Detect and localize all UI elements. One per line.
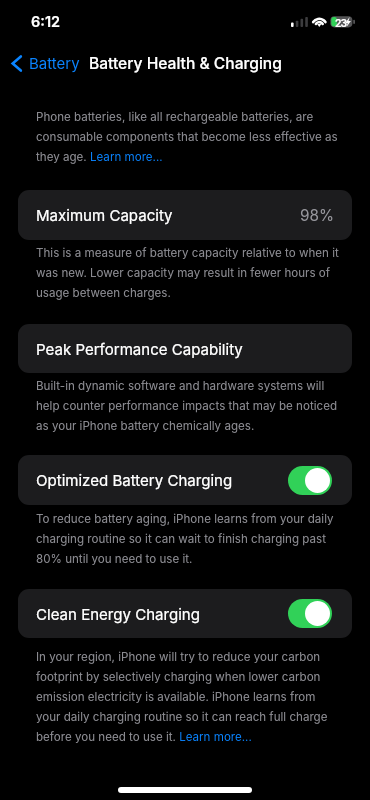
button[interactable]: Peak Performance Capability — [18, 324, 352, 373]
staticText: Optimized Battery Charging — [36, 471, 233, 489]
button[interactable]: Battery — [8, 50, 86, 76]
staticText: Battery — [29, 54, 80, 72]
button[interactable]: Clean Energy Charging — [288, 599, 332, 628]
staticText: Phone batteries, like all rechargeable b… — [36, 105, 339, 165]
staticText: Battery Health & Charging — [89, 54, 282, 73]
staticText: Built-in dynamic software and hardware s… — [36, 374, 339, 434]
staticText: In your region, iPhone will try to reduc… — [36, 645, 339, 745]
button[interactable]: Maximum Capacity — [18, 190, 352, 240]
staticText: To reduce battery aging, iPhone learns f… — [36, 507, 339, 567]
staticText: This is a measure of battery capacity re… — [36, 241, 339, 301]
staticText: 6:12 — [31, 13, 61, 31]
button[interactable]: Optimized Battery Charging — [288, 466, 332, 495]
staticText: Peak Performance Capability — [36, 340, 243, 358]
staticText: Maximum Capacity — [36, 206, 173, 224]
staticText: Clean Energy Charging — [36, 605, 200, 623]
staticText: 23 — [335, 17, 347, 30]
staticText: 98% — [300, 206, 334, 225]
